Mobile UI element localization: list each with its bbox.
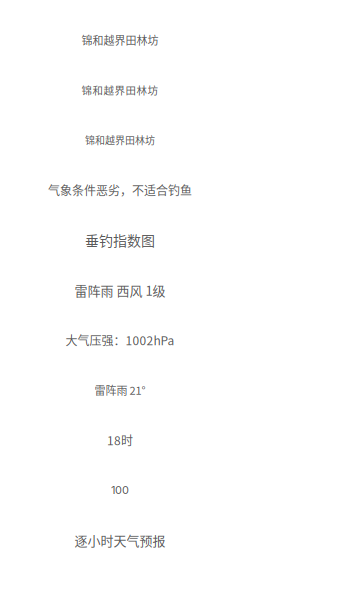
staticText: 大气压强：1002hPa	[65, 331, 174, 349]
staticText: 雷阵雨 西风 1级	[74, 281, 165, 299]
staticText: 气象条件恶劣，不适合钓鱼	[48, 181, 192, 199]
staticText: 锦和越界田林坊	[81, 82, 158, 98]
staticText: 100	[111, 483, 129, 497]
staticText: 锦和越界田林坊	[85, 133, 155, 147]
staticText: 雷阵雨 21°	[94, 382, 145, 398]
staticText: 垂钓指数图	[85, 230, 155, 250]
staticText: 18时	[107, 431, 133, 449]
staticText: 锦和越界田林坊	[81, 32, 158, 48]
staticText: 逐小时天气预报	[74, 531, 165, 549]
